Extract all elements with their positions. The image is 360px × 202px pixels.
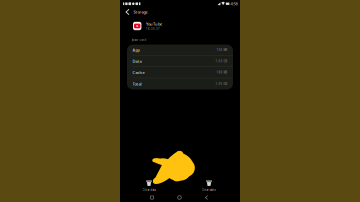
button[interactable]: Total (127, 78, 233, 89)
button[interactable]: Home (166, 193, 193, 202)
button[interactable]: App (127, 44, 233, 56)
button[interactable]: Clear cache (186, 180, 232, 192)
button[interactable]: Cache (127, 67, 233, 78)
staticText: 4:58 (230, 1, 237, 6)
button[interactable]: Data (127, 56, 233, 67)
staticText: 188 MB (216, 71, 227, 74)
staticText: 1.95 GB (215, 82, 227, 86)
staticText: Space used (131, 38, 146, 42)
staticText: App (132, 47, 139, 52)
button[interactable]: Back (193, 193, 220, 202)
staticText: 136 MB (216, 48, 227, 52)
button[interactable]: Recents (138, 193, 166, 202)
staticText: Cache (132, 70, 144, 75)
staticText: YouTube (146, 21, 162, 27)
button[interactable]: Clear data (126, 180, 172, 192)
staticText: 1.63 GB (215, 59, 227, 63)
staticText: 18.30.37 (146, 27, 160, 31)
staticText: Total (132, 81, 141, 86)
staticText: Clear cache (201, 188, 216, 192)
button[interactable]: Storage (120, 7, 240, 16)
staticText: Clear data (142, 188, 155, 192)
staticText: Storage (133, 9, 147, 15)
staticText: Data (132, 58, 141, 64)
